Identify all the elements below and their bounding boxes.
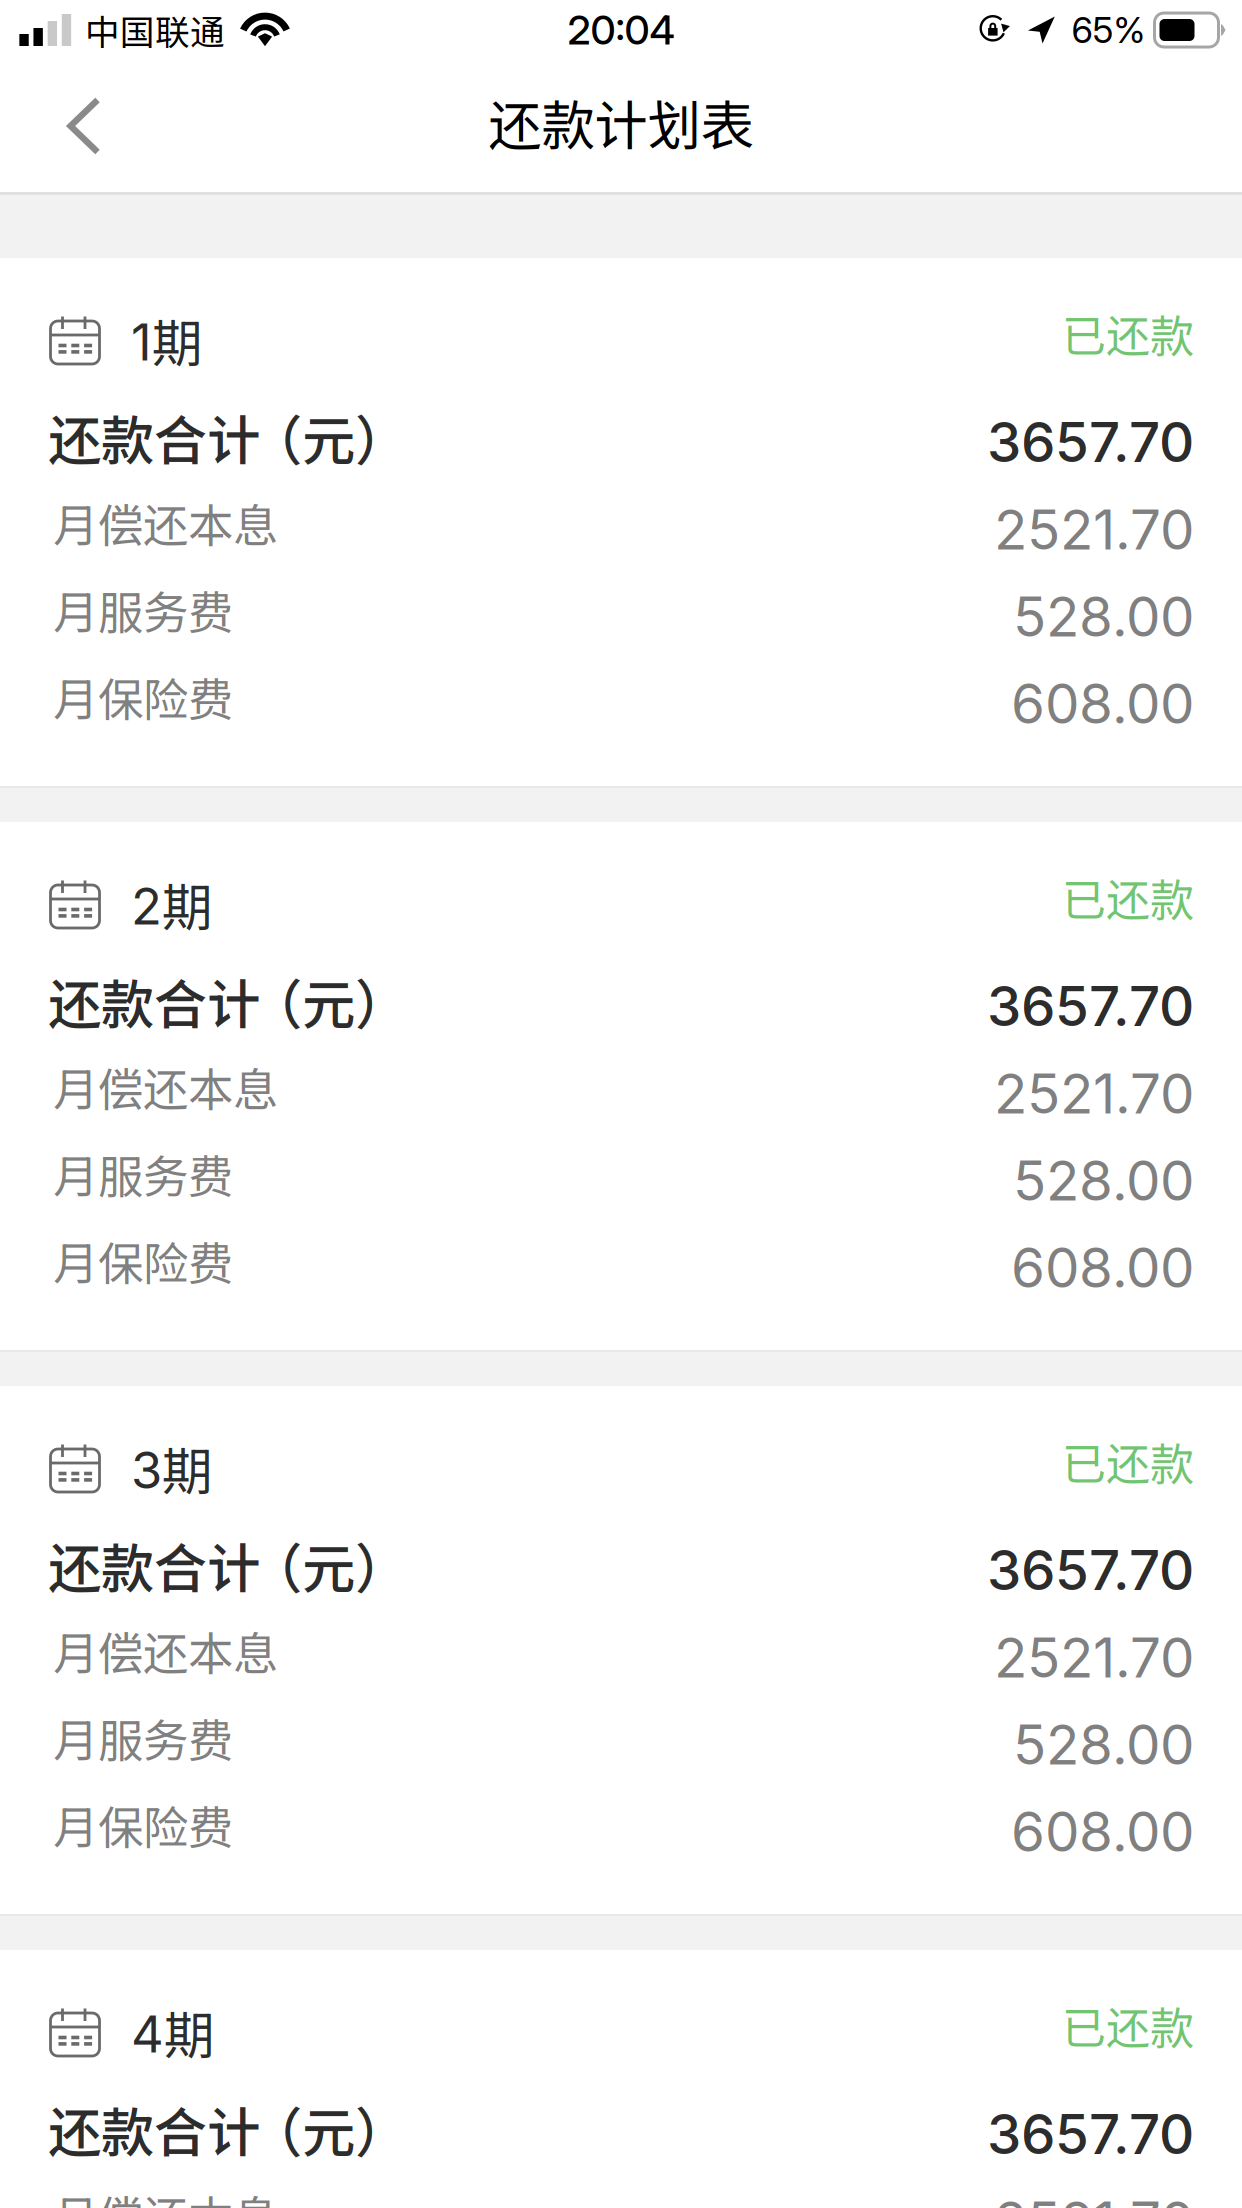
staticText: 月偿还本息 — [53, 2182, 278, 2208]
staticText: 月保险费 — [53, 664, 233, 729]
staticText: 月偿还本息 — [53, 1054, 278, 1119]
button[interactable]: 1 — [0, 258, 1242, 786]
staticText: （元） — [249, 398, 408, 476]
staticText: 2 — [131, 875, 162, 937]
staticText: 528.00 — [1013, 1147, 1194, 1213]
staticText: 2521.70 — [994, 1060, 1194, 1126]
button[interactable]: 2 — [0, 822, 1242, 1350]
staticText: 3657.70 — [987, 1537, 1194, 1603]
staticText: 还款合计 — [48, 1526, 260, 1604]
staticText: 还款合计 — [48, 398, 260, 476]
staticText: 3657.70 — [987, 409, 1194, 475]
staticText: 1 — [131, 311, 152, 373]
button[interactable]: 3 — [0, 1386, 1242, 1914]
staticText: 月偿还本息 — [53, 490, 278, 555]
staticText: 已还款 — [1062, 865, 1194, 929]
staticText: 期 — [162, 867, 213, 941]
staticText: 528.00 — [1013, 1711, 1194, 1777]
staticText: 4 — [131, 2003, 164, 2065]
staticText: 中国联通 — [85, 5, 225, 55]
staticText: 3 — [131, 1439, 162, 1501]
staticText: 608.00 — [1011, 670, 1194, 736]
staticText: 65% — [1071, 8, 1145, 52]
staticText: 月服务费 — [53, 577, 233, 642]
staticText: （元） — [249, 1526, 408, 1604]
staticText: 月保险费 — [53, 1792, 233, 1857]
staticText: 期 — [164, 1995, 215, 2069]
staticText: 20:04 — [567, 6, 674, 54]
staticText: 期 — [152, 303, 203, 377]
staticText: 608.00 — [1011, 1234, 1194, 1300]
staticText: 2521.70 — [994, 1624, 1194, 1690]
staticText: 月保险费 — [53, 1228, 233, 1293]
staticText: 2521.70 — [994, 2188, 1194, 2208]
staticText: （元） — [249, 962, 408, 1040]
staticText: 528.00 — [1013, 583, 1194, 649]
staticText: 还款合计 — [48, 2090, 260, 2168]
staticText: 月偿还本息 — [53, 1618, 278, 1683]
staticText: （元） — [249, 2090, 408, 2168]
staticText: 还款合计 — [48, 962, 260, 1040]
staticText: 月服务费 — [53, 1141, 233, 1206]
staticText: 608.00 — [1011, 1798, 1194, 1864]
staticText: 已还款 — [1062, 301, 1194, 365]
staticText: 已还款 — [1062, 1429, 1194, 1493]
staticText: 2521.70 — [994, 496, 1194, 562]
button[interactable]: 4 — [0, 1950, 1242, 2208]
staticText: 已还款 — [1062, 1993, 1194, 2057]
staticText: 月服务费 — [53, 1705, 233, 1770]
staticText: 还款计划表 — [488, 83, 753, 161]
button[interactable]: Back — [0, 60, 168, 192]
staticText: 期 — [162, 1431, 213, 1505]
staticText: 3657.70 — [987, 2101, 1194, 2167]
staticText: 3657.70 — [987, 973, 1194, 1039]
